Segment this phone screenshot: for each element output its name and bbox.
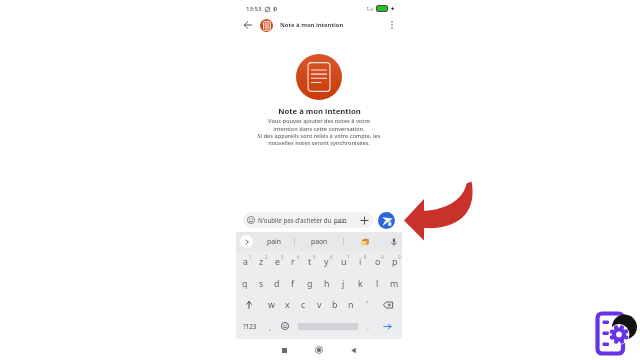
staticText: u — [341, 256, 347, 268]
button[interactable]: a — [236, 251, 252, 273]
button[interactable]: Backspace — [374, 294, 402, 315]
staticText: 13:53 — [246, 5, 262, 13]
button[interactable]: Back — [343, 340, 363, 360]
staticText: 0 — [398, 254, 401, 260]
staticText: 5 — [313, 254, 316, 260]
staticText: 3 — [281, 254, 284, 260]
staticText: Note à mon intention — [278, 106, 361, 116]
button[interactable]: Contact avatar — [260, 19, 273, 32]
button[interactable]: t — [300, 251, 317, 273]
button[interactable]: r — [284, 251, 300, 273]
staticText: ' — [366, 299, 368, 311]
button[interactable]: m — [385, 273, 402, 294]
button[interactable]: ?123 — [236, 315, 263, 337]
staticText: v — [317, 299, 322, 311]
button[interactable]: j — [334, 273, 351, 294]
button[interactable]: More options — [383, 16, 401, 34]
staticText: Vous pouvez ajouter des notes à votre in… — [236, 117, 402, 146]
staticText: 1 — [249, 254, 252, 260]
button[interactable]: w — [262, 294, 278, 315]
staticText: 6 — [330, 254, 333, 260]
button[interactable]: c — [294, 294, 310, 315]
button[interactable]: Expand suggestions — [240, 235, 253, 248]
staticText: paon — [311, 237, 328, 246]
staticText: 9 — [381, 254, 384, 260]
button[interactable]: v — [310, 294, 326, 315]
staticText: q — [242, 278, 248, 290]
button[interactable]: . — [362, 315, 373, 337]
button[interactable]: o — [368, 251, 385, 273]
button[interactable]: l — [368, 273, 385, 294]
staticText: n — [348, 299, 354, 311]
staticText: 8 — [364, 254, 367, 260]
staticText: p — [392, 256, 398, 268]
button[interactable]: z — [252, 251, 268, 273]
staticText: N'oublie pas d'acheter du — [258, 216, 334, 224]
staticText: e — [275, 256, 280, 268]
button[interactable]: d — [268, 273, 284, 294]
staticText: pain — [267, 237, 281, 246]
button[interactable]: n — [342, 294, 358, 315]
button[interactable]: k — [351, 273, 368, 294]
button[interactable]: h — [317, 273, 334, 294]
staticText: . — [367, 323, 369, 333]
staticText: h — [324, 278, 330, 290]
button[interactable]: x — [278, 294, 294, 315]
staticText: z — [259, 256, 264, 268]
button[interactable]: Back — [239, 16, 257, 34]
button[interactable]: Enter — [373, 315, 402, 337]
button[interactable]: q — [236, 273, 252, 294]
button[interactable]: Emoji keyboard — [276, 315, 294, 337]
button[interactable]: e — [268, 251, 284, 273]
staticText: , — [269, 323, 271, 333]
staticText: w — [268, 299, 275, 311]
staticText: pain — [334, 216, 347, 224]
staticText: b — [332, 299, 338, 311]
button[interactable]: g — [300, 273, 317, 294]
staticText: f — [291, 278, 295, 290]
staticText: g — [307, 278, 313, 290]
button[interactable]: Send — [378, 212, 395, 229]
staticText: d — [274, 278, 280, 290]
button[interactable]: Shift — [236, 294, 262, 315]
button[interactable]: Home — [309, 340, 329, 360]
staticText: 2 — [265, 254, 268, 260]
button[interactable]: N'oublie pas d'acheter du — [243, 212, 373, 228]
staticText: r — [291, 256, 295, 268]
button[interactable]: Recents — [274, 340, 294, 360]
button[interactable]: pain — [253, 232, 294, 251]
staticText: j — [342, 278, 345, 290]
button[interactable]: f — [284, 273, 300, 294]
button[interactable]: y — [317, 251, 334, 273]
staticText: i — [359, 256, 362, 268]
staticText: o — [375, 256, 381, 268]
staticText: c — [301, 299, 306, 311]
staticText: m — [390, 278, 399, 290]
button[interactable]: b — [326, 294, 342, 315]
button[interactable]: Emoji sticker — [344, 232, 386, 251]
button[interactable]: u — [334, 251, 351, 273]
button[interactable]: Voice input — [386, 232, 401, 251]
staticText: x — [285, 299, 290, 311]
staticText: ?123 — [243, 322, 257, 330]
staticText: a — [243, 256, 248, 268]
button[interactable]: paon — [295, 232, 343, 251]
button[interactable]: , — [263, 315, 276, 337]
staticText: 7 — [347, 254, 350, 260]
button[interactable]: ' — [358, 294, 374, 315]
button[interactable]: p — [385, 251, 402, 273]
staticText: Note à mon intention — [280, 21, 344, 29]
staticText: s — [259, 278, 264, 290]
button[interactable]: i — [351, 251, 368, 273]
staticText: k — [358, 278, 363, 290]
staticText: 4 — [297, 254, 300, 260]
staticText: y — [324, 256, 329, 268]
staticText: l — [376, 278, 379, 290]
button[interactable]: Space — [294, 315, 362, 337]
button[interactable]: s — [252, 273, 268, 294]
staticText: t — [308, 256, 312, 268]
